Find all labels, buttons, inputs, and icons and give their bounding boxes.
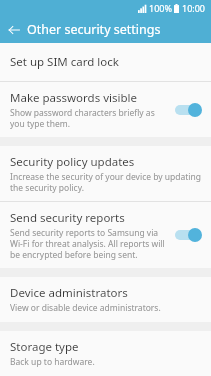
staticText: Send security reports to Samsung via Wi-… xyxy=(10,227,169,260)
staticText: Increase the security of your device by … xyxy=(10,171,203,193)
button[interactable]: Toggle xyxy=(173,102,203,118)
button[interactable]: Back xyxy=(0,16,27,43)
staticText: Send security reports xyxy=(10,210,125,226)
staticText: 10:00 xyxy=(182,2,206,14)
staticText: Device administrators xyxy=(10,285,128,301)
button[interactable]: Toggle xyxy=(173,227,203,243)
staticText: View or disable device administrators. xyxy=(10,302,161,314)
button[interactable]: Security policy updates xyxy=(0,146,211,201)
button[interactable]: Storage type xyxy=(0,331,211,376)
button[interactable]: Send security reports xyxy=(0,202,211,268)
staticText: Security policy updates xyxy=(10,154,135,170)
staticText: Other security settings xyxy=(27,21,161,38)
staticText: 100% xyxy=(149,2,172,14)
staticText: Set up SIM card lock xyxy=(10,54,119,70)
staticText: Back up to hardware. xyxy=(10,356,95,368)
button[interactable]: Make passwords visible xyxy=(0,82,211,137)
staticText: Storage type xyxy=(10,339,79,355)
button[interactable]: Set up SIM card lock xyxy=(0,43,211,81)
staticText: Show password characters briefly as you … xyxy=(10,107,169,129)
staticText: Make passwords visible xyxy=(10,90,137,106)
button[interactable]: Device administrators xyxy=(0,277,211,322)
